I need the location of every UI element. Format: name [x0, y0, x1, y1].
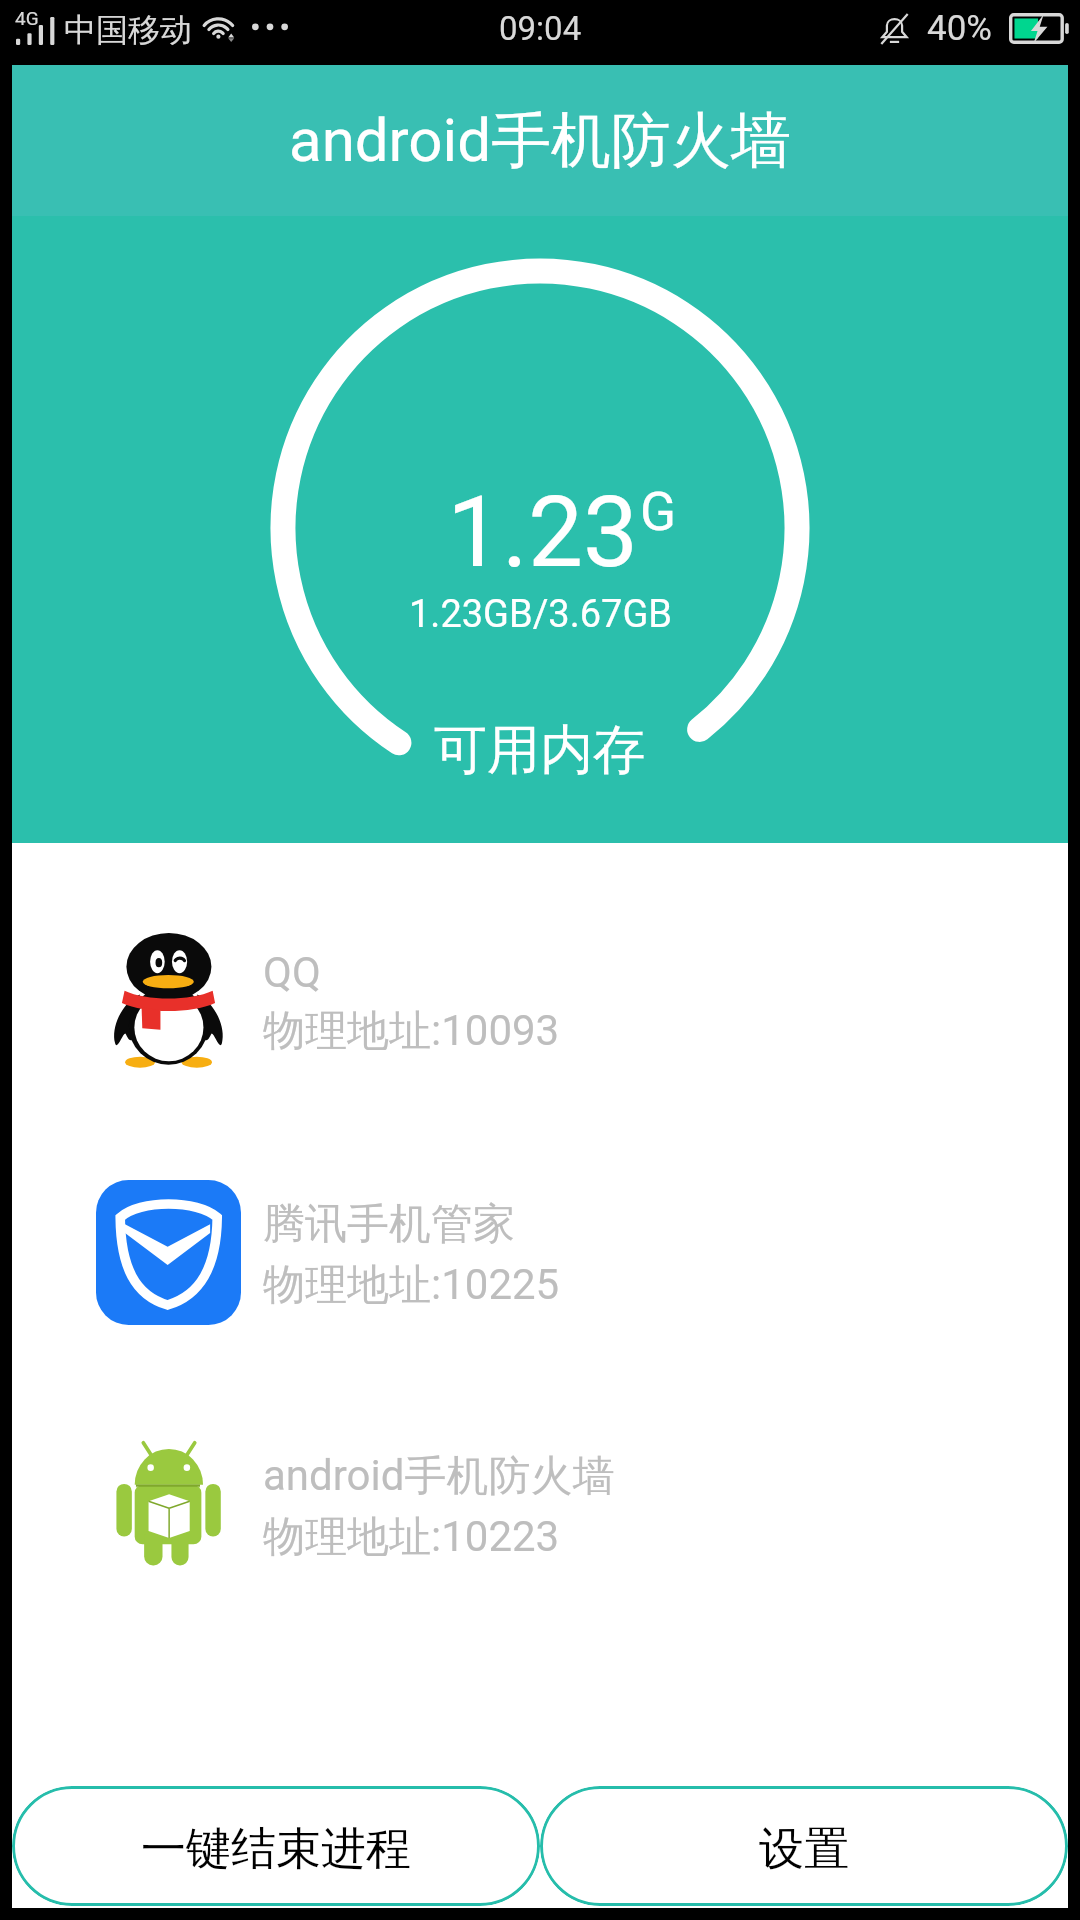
- other: android手机防火墙 icon: [96, 1432, 241, 1577]
- staticText: QQ: [263, 948, 321, 997]
- staticText: 物理地址:10223: [263, 1511, 560, 1564]
- staticText: 物理地址:10093: [263, 1005, 560, 1058]
- button[interactable]: 腾讯手机管家 icon: [12, 1126, 1068, 1378]
- button[interactable]: QQ icon: [12, 874, 1068, 1126]
- button[interactable]: 一键结束进程: [12, 1786, 540, 1906]
- staticText: 物理地址:10225: [263, 1259, 560, 1312]
- staticText: android手机防火墙: [289, 103, 792, 179]
- staticText: 可用内存: [434, 717, 646, 784]
- staticText: 09:04: [499, 9, 582, 48]
- staticText: 一键结束进程: [141, 1821, 411, 1878]
- staticText: G: [640, 481, 677, 543]
- staticText: 1.23: [447, 475, 639, 590]
- staticText: 中国移动: [64, 10, 192, 50]
- staticText: 40%: [927, 8, 992, 49]
- button[interactable]: android手机防火墙 icon: [12, 1378, 1068, 1630]
- staticText: 4G: [15, 7, 39, 29]
- button[interactable]: 设置: [540, 1786, 1068, 1906]
- staticText: android手机防火墙: [263, 1450, 615, 1503]
- other: QQ icon: [96, 928, 241, 1073]
- staticText: 腾讯手机管家: [263, 1198, 515, 1251]
- other: 腾讯手机管家 icon: [96, 1180, 241, 1325]
- staticText: 设置: [759, 1821, 849, 1878]
- staticText: 1.23GB/3.67GB: [409, 592, 672, 637]
